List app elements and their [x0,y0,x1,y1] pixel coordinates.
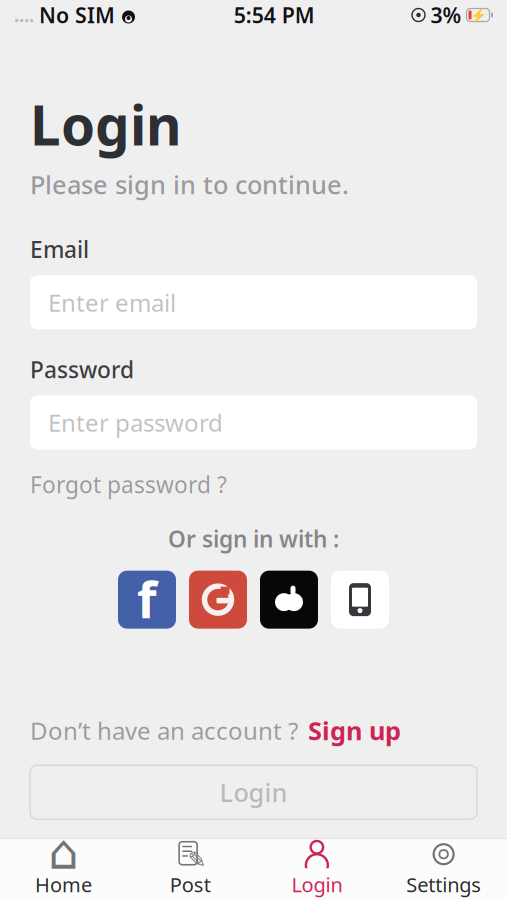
staticText: No SIM [39,1,115,29]
staticText: Settings [406,871,481,898]
button[interactable]: Settings [380,836,507,900]
staticText: Email [30,234,89,264]
staticText: Login [30,88,182,161]
button[interactable]: Sign in with phone number [331,571,389,629]
staticText: 3% [430,1,461,29]
staticText: 5:54 PM [234,1,315,29]
staticText: Login [291,871,342,898]
staticText: Or sign in with : [168,523,339,554]
button[interactable]: ⌂ [0,836,127,900]
button[interactable]: Enter password [30,395,477,449]
staticText: .... [14,3,34,27]
staticText: Enter password [48,406,223,438]
button[interactable]: Forgot password ? [30,469,227,499]
staticText: Password [30,354,134,384]
staticText: Home [35,871,92,898]
button[interactable]: Sign up [308,714,401,747]
staticText: ✎ [188,847,207,873]
button[interactable]: Sign in with Facebook [118,571,176,629]
button[interactable]: Sign in with Google [189,571,247,629]
staticText: Sign up [308,714,401,747]
staticText: f [137,565,157,632]
staticText: Login [219,775,287,809]
staticText: Post [170,871,211,898]
staticText: Forgot password ? [30,469,227,499]
staticText: ⌂ [48,825,78,879]
staticText: ⚡ [469,7,486,23]
button[interactable]: Login [253,836,380,900]
staticText: Enter email [48,286,176,318]
button[interactable]: ✎ [127,836,254,900]
button[interactable]: Sign in with Apple [260,571,318,629]
button[interactable]: Enter email [30,275,477,329]
button[interactable]: Login [30,765,477,819]
staticText: Please sign in to continue. [30,168,349,201]
staticText: Don’t have an account ? [30,714,298,746]
